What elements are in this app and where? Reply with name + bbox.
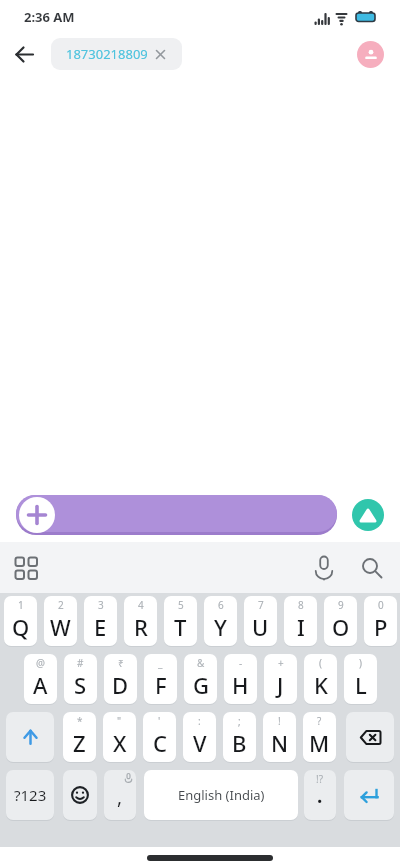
staticText: R — [134, 612, 148, 642]
button[interactable]: ( — [304, 654, 337, 704]
button[interactable]: ₹ — [104, 654, 137, 704]
staticText: 2 — [58, 598, 64, 612]
button[interactable]: 5 — [164, 596, 197, 646]
staticText: Z — [73, 728, 86, 758]
staticText: B — [232, 728, 247, 758]
button[interactable]: ?123 — [6, 770, 54, 820]
staticText: 1 — [18, 598, 24, 612]
staticText: ; — [238, 714, 241, 728]
staticText: 6 — [218, 598, 224, 612]
staticText: # — [77, 656, 84, 670]
button[interactable]: ) — [344, 654, 377, 704]
staticText: A — [33, 670, 48, 700]
staticText: J — [277, 670, 284, 700]
staticText: , — [117, 784, 123, 810]
staticText: 0 — [378, 598, 384, 612]
staticText: O — [332, 612, 350, 642]
button[interactable]: !? — [304, 770, 336, 820]
button[interactable] — [16, 495, 337, 535]
button[interactable]: + — [264, 654, 297, 704]
button[interactable]: ' — [143, 712, 176, 762]
button[interactable]: 3 — [84, 596, 117, 646]
button[interactable]: : — [183, 712, 216, 762]
button[interactable]: 9 — [324, 596, 357, 646]
staticText: 9 — [338, 598, 344, 612]
button[interactable]: English (India) — [144, 770, 298, 820]
staticText: . — [317, 783, 323, 809]
staticText: @ — [36, 656, 45, 670]
button[interactable]: & — [184, 654, 217, 704]
button[interactable] — [14, 556, 38, 580]
staticText: ( — [319, 656, 322, 670]
staticText: K — [314, 670, 328, 700]
staticText: ?123 — [14, 785, 47, 805]
button[interactable]: 2 — [44, 596, 77, 646]
button[interactable]: * — [63, 712, 96, 762]
button[interactable]: 7 — [244, 596, 277, 646]
button[interactable] — [312, 556, 336, 580]
button[interactable] — [352, 499, 384, 531]
staticText: * — [77, 714, 83, 728]
button[interactable] — [344, 770, 394, 820]
button[interactable]: 4 — [124, 596, 157, 646]
staticText: G — [193, 670, 209, 700]
staticText: ? — [317, 714, 322, 728]
staticText: ' — [158, 714, 161, 728]
button[interactable]: @ — [24, 654, 57, 704]
staticText: L — [355, 670, 367, 700]
button[interactable]: 0 — [364, 596, 397, 646]
button[interactable]: # — [64, 654, 97, 704]
staticText: Q — [12, 612, 30, 642]
button[interactable]: _ — [144, 654, 177, 704]
staticText: C — [153, 728, 167, 758]
button[interactable]: ; — [223, 712, 256, 762]
staticText: 4 — [138, 598, 144, 612]
staticText: F — [155, 670, 167, 700]
button[interactable] — [346, 712, 394, 762]
staticText: ! — [278, 714, 281, 728]
button[interactable]: ? — [303, 712, 336, 762]
staticText: E — [94, 612, 107, 642]
button[interactable]: 6 — [204, 596, 237, 646]
button[interactable]: - — [224, 654, 257, 704]
staticText: & — [197, 656, 205, 670]
staticText: T — [174, 612, 187, 642]
staticText: ₹ — [118, 656, 124, 670]
staticText: Y — [214, 612, 227, 642]
staticText: I — [297, 612, 305, 642]
button[interactable] — [360, 556, 384, 580]
staticText: U — [252, 612, 269, 642]
button[interactable]: " — [103, 712, 136, 762]
staticText: " — [117, 714, 122, 728]
staticText: : — [198, 714, 201, 728]
staticText: 8 — [298, 598, 304, 612]
button[interactable]: 18730218809 — [51, 38, 182, 70]
button[interactable]: ! — [263, 712, 296, 762]
button[interactable]: 1 — [4, 596, 37, 646]
button[interactable] — [6, 36, 42, 72]
staticText: W — [50, 612, 71, 642]
button[interactable]: , — [104, 770, 136, 820]
staticText: 7 — [258, 598, 264, 612]
button[interactable] — [6, 712, 54, 762]
button[interactable] — [357, 41, 384, 68]
staticText: 18730218809 — [66, 45, 148, 63]
staticText: - — [239, 656, 243, 670]
staticText: X — [113, 728, 127, 758]
staticText: 2:36 AM — [24, 8, 75, 26]
staticText: P — [374, 612, 388, 642]
staticText: ) — [359, 656, 362, 670]
staticText: 3 — [98, 598, 104, 612]
button[interactable] — [63, 770, 97, 820]
staticText: !? — [316, 772, 324, 786]
staticText: H — [232, 670, 249, 700]
staticText: N — [271, 728, 289, 758]
staticText: 5 — [178, 598, 184, 612]
button[interactable]: 8 — [284, 596, 317, 646]
staticText: D — [112, 670, 129, 700]
staticText: M — [309, 728, 330, 758]
staticText: _ — [158, 656, 163, 670]
staticText: + — [278, 656, 284, 670]
staticText: S — [74, 670, 87, 700]
staticText: English (India) — [178, 786, 265, 804]
